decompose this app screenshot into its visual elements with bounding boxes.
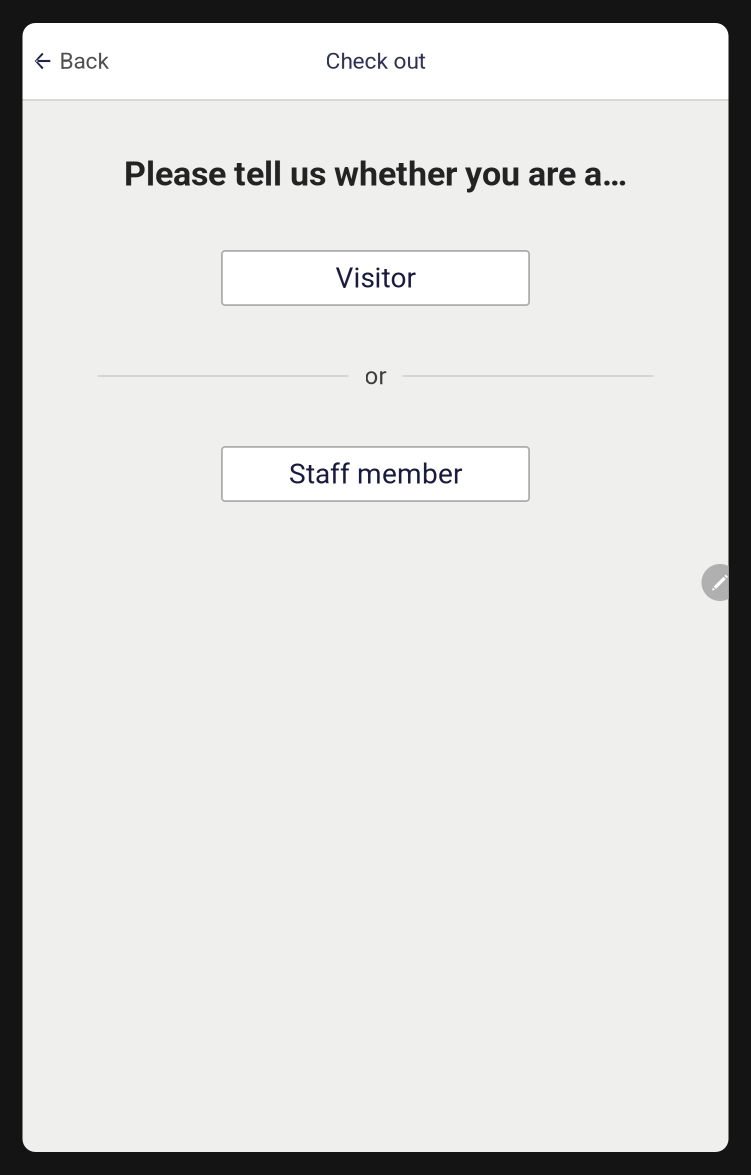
button[interactable]: Visitor: [221, 250, 530, 306]
staticText: Back: [59, 48, 108, 74]
button[interactable]: Back: [22, 23, 120, 99]
button[interactable]: Edit: [701, 564, 738, 601]
staticText: or: [364, 362, 386, 390]
staticText: Please tell us whether you are a…: [124, 154, 627, 194]
staticText: Staff member: [289, 458, 462, 490]
button[interactable]: Staff member: [221, 446, 530, 502]
staticText: Visitor: [335, 262, 415, 294]
staticText: Check out: [325, 48, 425, 74]
